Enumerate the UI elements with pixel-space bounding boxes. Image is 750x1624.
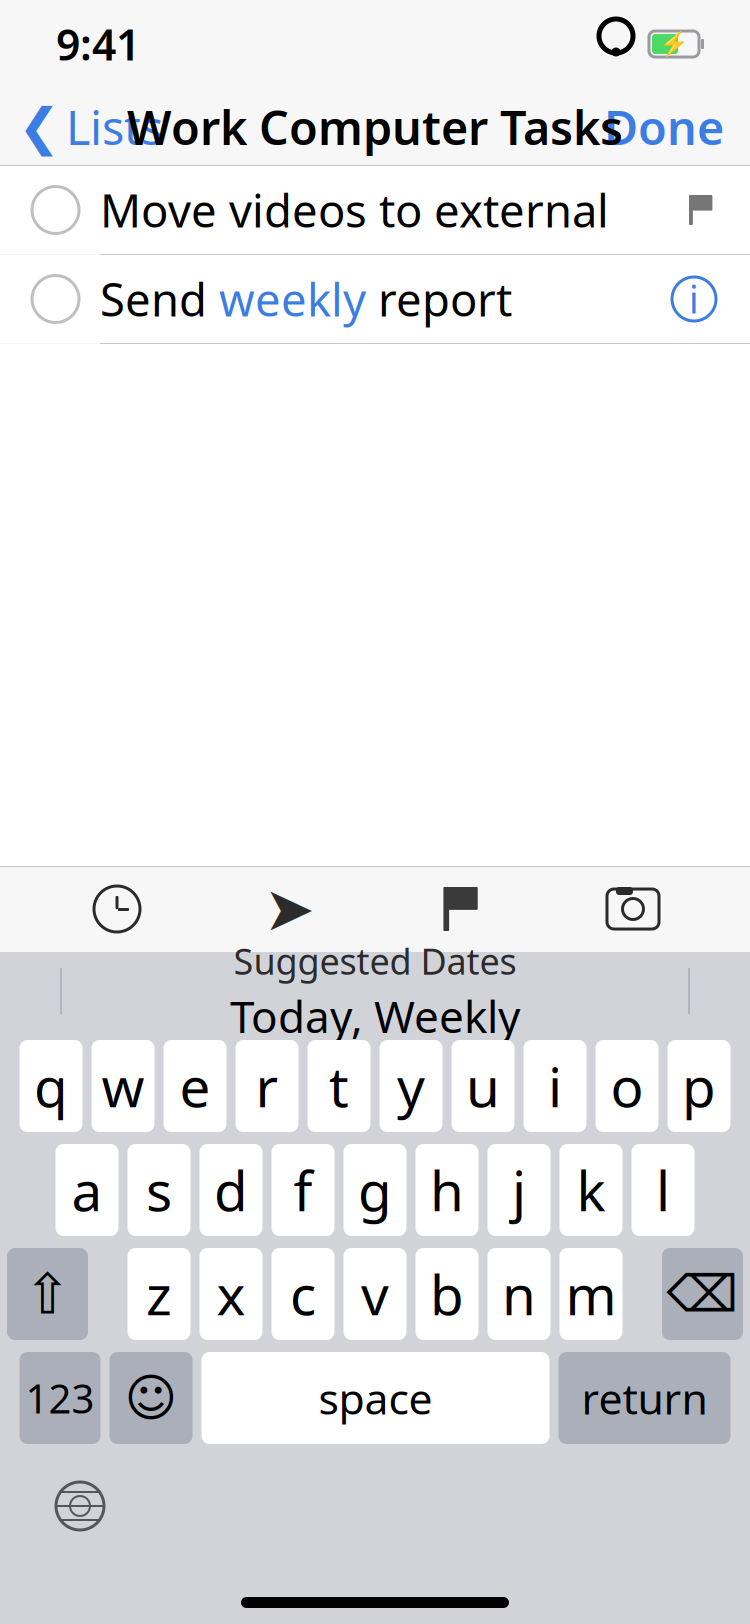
staticText: l	[656, 1154, 670, 1226]
staticText: p	[682, 1050, 716, 1122]
button[interactable]: m	[559, 1248, 622, 1340]
button[interactable]: k	[559, 1144, 622, 1236]
button[interactable]: p	[667, 1040, 730, 1132]
button[interactable]: f	[271, 1144, 334, 1236]
button[interactable]: q	[19, 1040, 82, 1132]
button[interactable]: Flag	[375, 866, 547, 952]
button[interactable]: z	[127, 1248, 190, 1340]
staticText: y	[397, 1050, 425, 1122]
button[interactable]: u	[451, 1040, 514, 1132]
staticText: b	[430, 1258, 464, 1330]
staticText: ➤	[263, 874, 314, 944]
button[interactable]: x	[199, 1248, 262, 1340]
button[interactable]: 123	[19, 1352, 100, 1444]
staticText: g	[358, 1154, 392, 1226]
button[interactable]: Next keyboard	[44, 1470, 116, 1542]
staticText: u	[466, 1050, 500, 1122]
staticText: return	[581, 1370, 707, 1426]
staticText: i	[548, 1050, 562, 1122]
staticText: r	[255, 1050, 278, 1122]
staticText: report	[366, 269, 512, 329]
staticText: ⚡	[659, 30, 689, 58]
button[interactable]: Send	[0, 255, 750, 344]
button[interactable]: ❮	[0, 86, 163, 168]
staticText: 9:41	[56, 16, 140, 72]
button[interactable]: h	[415, 1144, 478, 1236]
button[interactable]: l	[631, 1144, 694, 1236]
button[interactable]: Add photo	[547, 866, 719, 952]
staticText: space	[318, 1370, 432, 1426]
button[interactable]: e	[163, 1040, 226, 1132]
button[interactable]: Remind me at a location	[203, 866, 375, 952]
button[interactable]: y	[379, 1040, 442, 1132]
button[interactable]: g	[343, 1144, 406, 1236]
staticText: i	[689, 274, 699, 324]
staticText: Done	[604, 96, 724, 158]
button[interactable]: Done	[604, 86, 750, 168]
staticText: k	[576, 1154, 605, 1226]
button[interactable]: o	[595, 1040, 658, 1132]
staticText: Work Computer Tasks	[127, 96, 623, 158]
staticText: q	[34, 1050, 68, 1122]
button[interactable]: Shift	[7, 1248, 88, 1340]
button[interactable]: n	[487, 1248, 550, 1340]
staticText: weekly	[219, 269, 366, 329]
staticText: t	[329, 1050, 349, 1122]
staticText: ☺	[124, 1369, 177, 1427]
button[interactable]: r	[235, 1040, 298, 1132]
button[interactable]: Suggested Dates	[190, 933, 560, 1049]
button[interactable]: w	[91, 1040, 154, 1132]
staticText: n	[502, 1258, 536, 1330]
staticText: h	[430, 1154, 464, 1226]
staticText: Send	[100, 269, 219, 329]
staticText: a	[71, 1154, 102, 1226]
staticText: j	[512, 1154, 526, 1226]
button[interactable]: v	[343, 1248, 406, 1340]
staticText: v	[361, 1258, 389, 1330]
button[interactable]: Emoji	[109, 1352, 192, 1444]
staticText: c	[290, 1258, 316, 1330]
button[interactable]: a	[55, 1144, 118, 1236]
staticText: Lists	[66, 96, 163, 158]
button[interactable]: b	[415, 1248, 478, 1340]
staticText: 123	[25, 1371, 94, 1424]
button[interactable]: t	[307, 1040, 370, 1132]
button[interactable]: c	[271, 1248, 334, 1340]
staticText: o	[610, 1050, 643, 1122]
staticText: d	[214, 1154, 248, 1226]
button[interactable]: Remind me at a time	[31, 866, 203, 952]
button[interactable]: Move videos to external	[0, 166, 750, 255]
staticText: z	[146, 1258, 172, 1330]
staticText: x	[216, 1258, 245, 1330]
staticText: Today, Weekly	[230, 987, 520, 1045]
button[interactable]: s	[127, 1144, 190, 1236]
staticText: ⌫	[666, 1265, 738, 1323]
button[interactable]: Delete	[662, 1248, 743, 1340]
staticText: w	[101, 1050, 144, 1122]
staticText: e	[179, 1050, 210, 1122]
button[interactable]: j	[487, 1144, 550, 1236]
staticText: ⇧	[24, 1262, 71, 1326]
button[interactable]: i	[523, 1040, 586, 1132]
staticText: m	[565, 1258, 616, 1330]
staticText: Move videos to external	[100, 180, 609, 240]
staticText: f	[293, 1154, 312, 1226]
staticText: s	[146, 1154, 172, 1226]
button[interactable]: d	[199, 1144, 262, 1236]
staticText: Suggested Dates	[233, 937, 516, 985]
staticText: ❮	[18, 98, 60, 156]
button[interactable]: space	[201, 1352, 549, 1444]
button[interactable]: return	[558, 1352, 730, 1444]
